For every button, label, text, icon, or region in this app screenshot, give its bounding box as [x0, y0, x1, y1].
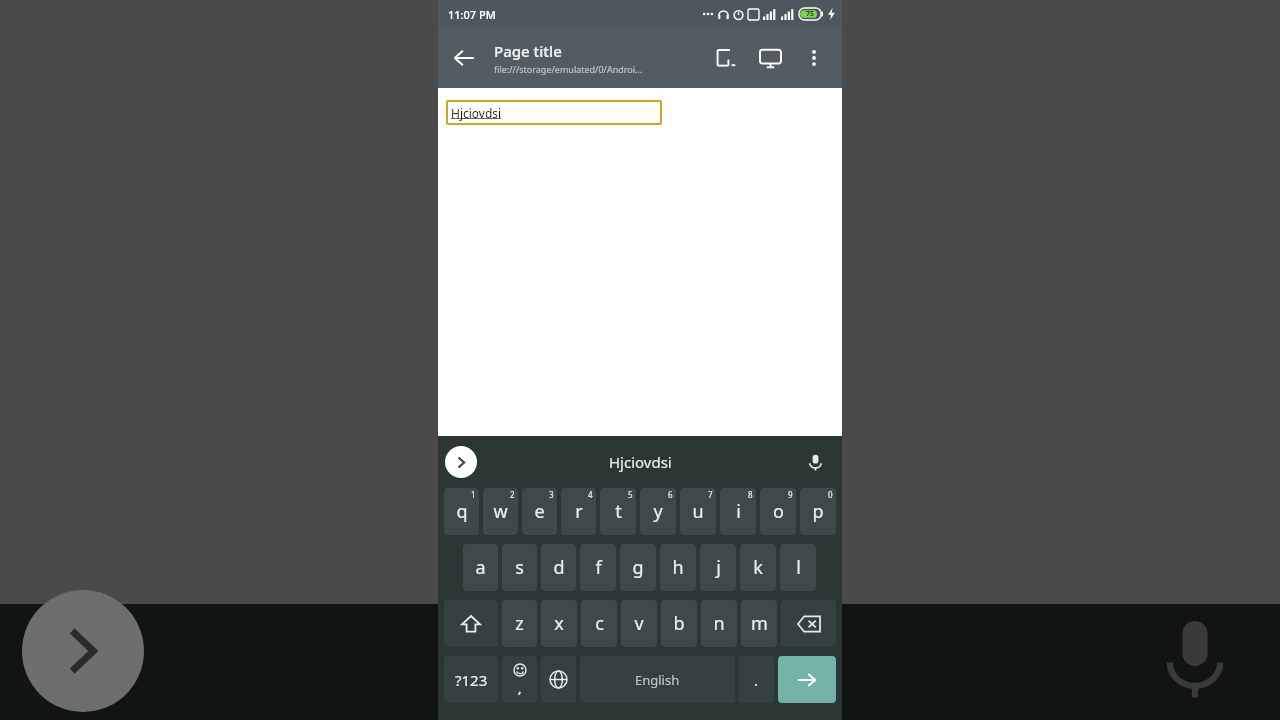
- staticText: j: [716, 555, 721, 580]
- button[interactable]: r: [561, 488, 596, 535]
- staticText: Hjciovdsi: [451, 105, 502, 121]
- button[interactable]: h: [660, 544, 696, 591]
- staticText: u: [692, 499, 704, 524]
- button[interactable]: Page title: [494, 41, 674, 75]
- button[interactable]: k: [740, 544, 776, 591]
- staticText: 8: [748, 489, 753, 500]
- staticText: z: [515, 611, 524, 636]
- staticText: Page title: [494, 41, 562, 61]
- staticText: k: [753, 555, 763, 580]
- staticText: i: [736, 499, 741, 524]
- button[interactable]: Back: [442, 36, 486, 80]
- button[interactable]: More options: [792, 36, 836, 80]
- button[interactable]: e: [522, 488, 557, 535]
- button[interactable]: x: [541, 600, 577, 647]
- staticText: ,: [518, 680, 522, 696]
- staticText: 3: [549, 489, 554, 500]
- staticText: English: [635, 671, 680, 689]
- staticText: 7: [708, 489, 713, 500]
- staticText: m: [751, 611, 768, 636]
- staticText: 4: [588, 489, 593, 500]
- staticText: y: [653, 499, 663, 524]
- staticText: b: [673, 611, 685, 636]
- button[interactable]: z: [502, 600, 537, 647]
- staticText: o: [773, 499, 784, 524]
- button[interactable]: y: [640, 488, 676, 535]
- staticText: e: [534, 499, 545, 524]
- staticText: 75: [806, 9, 815, 19]
- button[interactable]: Emoji: [502, 656, 537, 703]
- staticText: w: [493, 499, 508, 524]
- button[interactable]: v: [621, 600, 657, 647]
- button[interactable]: t: [600, 488, 636, 535]
- button[interactable]: b: [661, 600, 697, 647]
- staticText: 6: [668, 489, 673, 500]
- button[interactable]: w: [483, 488, 518, 535]
- button[interactable]: Shift: [444, 600, 498, 647]
- button[interactable]: Open in new: [704, 36, 748, 80]
- staticText: s: [515, 555, 524, 580]
- button[interactable]: n: [701, 600, 737, 647]
- button[interactable]: Enter: [778, 656, 836, 703]
- staticText: 9: [788, 489, 793, 500]
- staticText: 1: [471, 489, 476, 500]
- button[interactable]: .: [739, 656, 774, 703]
- button[interactable]: q: [444, 488, 479, 535]
- button[interactable]: m: [741, 600, 777, 647]
- staticText: r: [575, 499, 583, 524]
- button[interactable]: p: [800, 488, 836, 535]
- button[interactable]: i: [720, 488, 756, 535]
- staticText: n: [713, 611, 725, 636]
- staticText: d: [553, 555, 565, 580]
- staticText: v: [634, 611, 644, 636]
- button[interactable]: j: [700, 544, 736, 591]
- button[interactable]: l: [780, 544, 816, 591]
- button[interactable]: Cast: [748, 36, 792, 80]
- button[interactable]: Expand suggestions: [445, 446, 477, 478]
- button[interactable]: English: [580, 656, 735, 703]
- button[interactable]: d: [541, 544, 576, 591]
- staticText: 2: [510, 489, 515, 500]
- staticText: h: [672, 555, 684, 580]
- staticText: g: [632, 555, 644, 580]
- button[interactable]: Change language: [541, 656, 576, 703]
- staticText: 11:07 PM: [448, 7, 496, 22]
- button[interactable]: Hjciovdsi: [446, 100, 662, 125]
- staticText: file:///storage/emulated/0/Androi…: [494, 63, 643, 75]
- staticText: ?123: [455, 670, 488, 690]
- staticText: .: [754, 670, 759, 690]
- button[interactable]: Next: [22, 590, 144, 712]
- staticText: f: [595, 555, 602, 580]
- staticText: l: [796, 555, 801, 580]
- button[interactable]: Hjciovdsi: [609, 452, 672, 472]
- button[interactable]: Voice input: [1150, 612, 1240, 702]
- button[interactable]: c: [581, 600, 617, 647]
- staticText: x: [554, 611, 564, 636]
- button[interactable]: Voice input: [800, 447, 830, 477]
- button[interactable]: g: [620, 544, 656, 591]
- button[interactable]: s: [502, 544, 537, 591]
- staticText: 5: [628, 489, 633, 500]
- staticText: t: [615, 499, 622, 524]
- staticText: q: [456, 499, 468, 524]
- button[interactable]: Backspace: [781, 600, 836, 647]
- staticText: a: [475, 555, 486, 580]
- staticText: c: [595, 611, 604, 636]
- staticText: 0: [828, 489, 833, 500]
- staticText: p: [812, 499, 824, 524]
- button[interactable]: ?123: [444, 656, 498, 703]
- button[interactable]: a: [463, 544, 498, 591]
- button[interactable]: u: [680, 488, 716, 535]
- button[interactable]: f: [580, 544, 616, 591]
- button[interactable]: o: [760, 488, 796, 535]
